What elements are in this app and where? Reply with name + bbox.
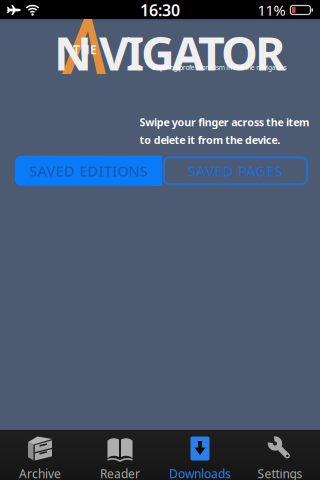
staticText: 16:30 <box>140 0 180 21</box>
staticText: SAVED EDITIONS <box>29 161 148 181</box>
staticText: THE <box>73 41 97 57</box>
button[interactable]: SAVED EDITIONS <box>15 156 162 186</box>
staticText: Inspiring professionalism in marine navi… <box>152 63 286 72</box>
staticText: Swipe your finger across the item to del… <box>140 115 309 147</box>
button[interactable]: Downloads <box>160 431 240 480</box>
staticText: 11% <box>257 0 285 20</box>
staticText: SAVED PAGES <box>188 161 283 181</box>
staticText: Settings <box>257 465 302 480</box>
staticText: Downloads <box>169 465 231 480</box>
button[interactable]: Settings <box>240 431 320 480</box>
staticText: Reader <box>100 465 140 480</box>
staticText: Archive <box>19 465 61 480</box>
button[interactable]: SAVED PAGES <box>164 157 307 184</box>
staticText: N <box>54 21 92 83</box>
button[interactable]: Archive <box>0 431 80 480</box>
staticText: VIGATOR <box>99 21 286 83</box>
button[interactable]: Reader <box>80 431 160 480</box>
